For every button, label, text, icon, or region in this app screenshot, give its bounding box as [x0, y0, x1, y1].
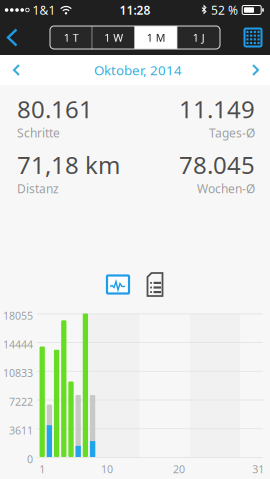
- staticText: 1&1: [32, 2, 55, 18]
- button[interactable]: Next month: [242, 58, 270, 82]
- staticText: 11.149: [179, 93, 255, 125]
- button[interactable]: 1 W: [92, 26, 135, 49]
- button[interactable]: Chart view: [106, 275, 129, 294]
- button[interactable]: Oktober, 2014: [94, 61, 182, 79]
- staticText: 10: [101, 462, 113, 476]
- staticText: 0: [27, 452, 33, 466]
- staticText: 11:28: [119, 2, 150, 18]
- staticText: 1 T: [64, 30, 79, 45]
- staticText: 71,18 km: [17, 149, 120, 181]
- staticText: 20: [173, 462, 185, 476]
- button[interactable]: Back: [0, 20, 29, 54]
- staticText: Schritte: [17, 125, 60, 141]
- button[interactable]: 1 J: [177, 26, 220, 49]
- staticText: Distanz: [17, 181, 59, 197]
- button[interactable]: 1 M: [135, 26, 177, 49]
- staticText: 78.045: [179, 149, 255, 181]
- staticText: 10833: [3, 366, 33, 380]
- staticText: Tages-Ø: [209, 125, 255, 141]
- staticText: 1 M: [147, 30, 166, 45]
- staticText: 1 W: [104, 30, 123, 45]
- staticText: Wochen-Ø: [197, 181, 255, 197]
- staticText: 31: [252, 462, 264, 476]
- button[interactable]: Previous month: [0, 58, 34, 82]
- button[interactable]: List view: [146, 272, 163, 297]
- staticText: 80.161: [17, 93, 93, 125]
- staticText: 3611: [9, 423, 33, 437]
- button[interactable]: 1 T: [50, 26, 92, 49]
- staticText: Oktober, 2014: [94, 61, 182, 79]
- staticText: 1: [39, 462, 45, 476]
- staticText: 18055: [3, 308, 33, 323]
- staticText: 7222: [9, 395, 33, 409]
- staticText: 14444: [3, 337, 33, 351]
- button[interactable]: Calendar: [234, 21, 270, 54]
- staticText: 52 %: [211, 2, 238, 18]
- staticText: 1 J: [193, 30, 205, 45]
